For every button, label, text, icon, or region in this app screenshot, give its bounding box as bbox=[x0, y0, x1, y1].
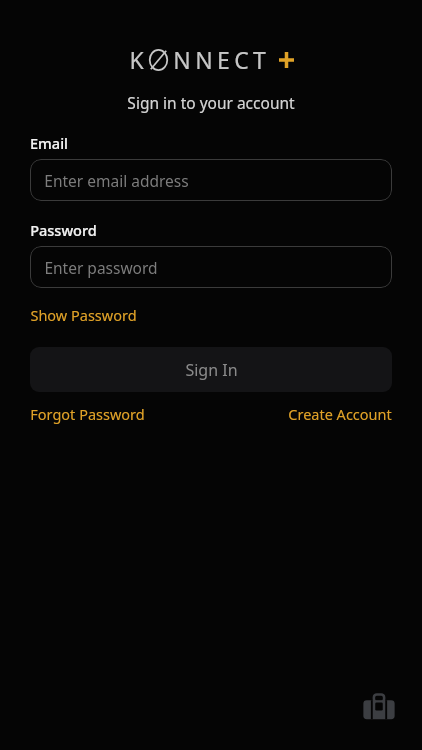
staticText: K bbox=[129, 44, 144, 75]
staticText: Create Account bbox=[288, 404, 392, 424]
staticText: Forgot Password bbox=[30, 404, 145, 424]
staticText: N bbox=[195, 44, 213, 75]
staticText: T bbox=[253, 44, 266, 75]
staticText: E bbox=[217, 44, 230, 75]
button[interactable]: Forgot Password bbox=[30, 404, 145, 424]
staticText: Enter email address bbox=[44, 170, 189, 191]
staticText: N bbox=[173, 44, 191, 75]
button[interactable]: Enter password bbox=[30, 246, 392, 288]
staticText: Enter password bbox=[44, 257, 158, 278]
button[interactable]: Show Password bbox=[30, 305, 137, 325]
staticText: Show Password bbox=[30, 305, 137, 325]
staticText: C bbox=[234, 44, 249, 75]
button[interactable]: Enter email address bbox=[30, 159, 392, 201]
button[interactable]: Sign In bbox=[30, 347, 392, 392]
staticText: Email bbox=[30, 133, 68, 153]
staticText: Sign in to your account bbox=[127, 92, 295, 113]
staticText: Password bbox=[30, 220, 97, 240]
button[interactable]: Create Account bbox=[288, 404, 392, 424]
staticText: Sign In bbox=[185, 359, 238, 381]
button[interactable]: Support toolbox bbox=[362, 690, 396, 724]
button[interactable]: K bbox=[129, 44, 294, 75]
